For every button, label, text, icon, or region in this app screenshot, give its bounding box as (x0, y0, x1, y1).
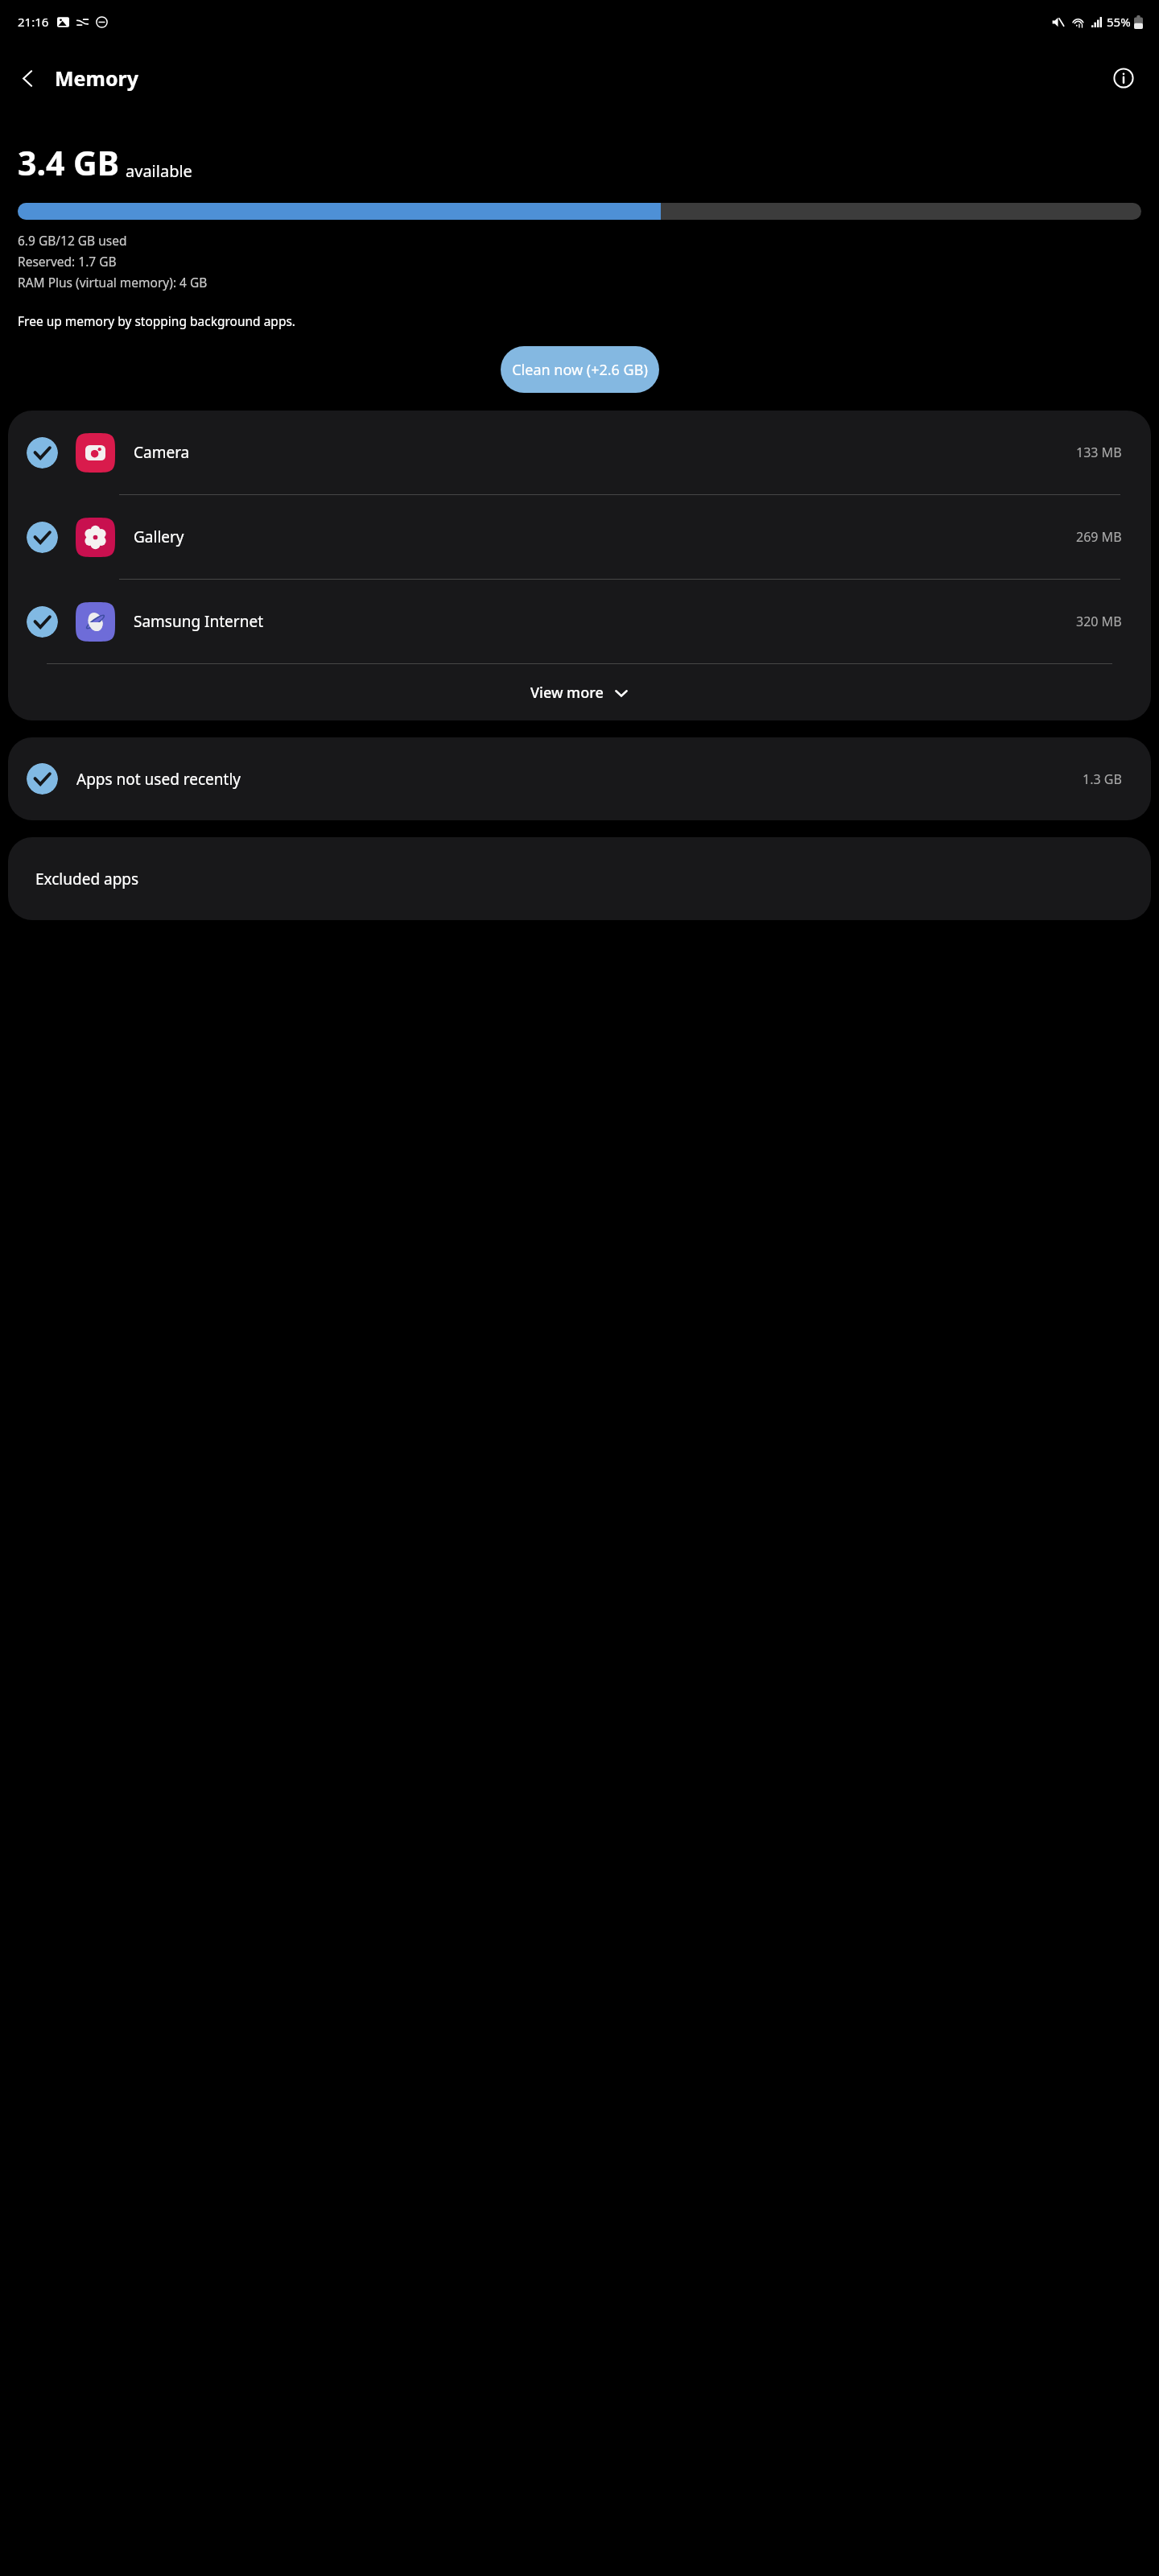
button[interactable]: Clean now (+2.6 GB) (501, 346, 659, 393)
staticText: 320 MB (1076, 613, 1122, 630)
staticText: Apps not used recently (76, 769, 1083, 790)
staticText: 269 MB (1076, 528, 1122, 546)
button[interactable]: Selected (27, 763, 58, 795)
staticText: Clean now (+2.6 GB) (512, 360, 648, 380)
staticText: RAM Plus (virtual memory): 4 GB (18, 274, 208, 291)
staticText: 21:16 (18, 14, 49, 30)
button[interactable]: Selected (27, 522, 58, 553)
staticText: Memory (55, 64, 138, 92)
staticText: Camera (134, 442, 1076, 463)
staticText: Excluded apps (35, 869, 1151, 890)
staticText: Free up memory by stopping background ap… (18, 312, 296, 329)
button[interactable]: Selected (8, 580, 1151, 663)
button[interactable]: Selected (8, 737, 1151, 820)
staticText: 1.3 GB (1083, 770, 1122, 788)
button[interactable]: Excluded apps (8, 837, 1151, 920)
button[interactable]: Selected (27, 437, 58, 469)
staticText: Gallery (134, 526, 1076, 547)
staticText: available (126, 160, 192, 182)
button[interactable]: Back (6, 57, 48, 99)
staticText: View more (530, 683, 604, 703)
button[interactable]: Selected (27, 606, 58, 638)
button[interactable]: Selected (8, 495, 1151, 579)
button[interactable]: Information (1103, 57, 1145, 99)
staticText: Reserved: 1.7 GB (18, 253, 117, 270)
staticText: 3.4 GB (18, 140, 120, 185)
staticText: 133 MB (1076, 444, 1122, 461)
staticText: Samsung Internet (134, 611, 1076, 632)
button[interactable]: Selected (8, 411, 1151, 494)
staticText: 55% (1107, 14, 1131, 30)
staticText: 6.9 GB/12 GB used (18, 232, 127, 249)
button[interactable]: View more (8, 664, 1151, 720)
